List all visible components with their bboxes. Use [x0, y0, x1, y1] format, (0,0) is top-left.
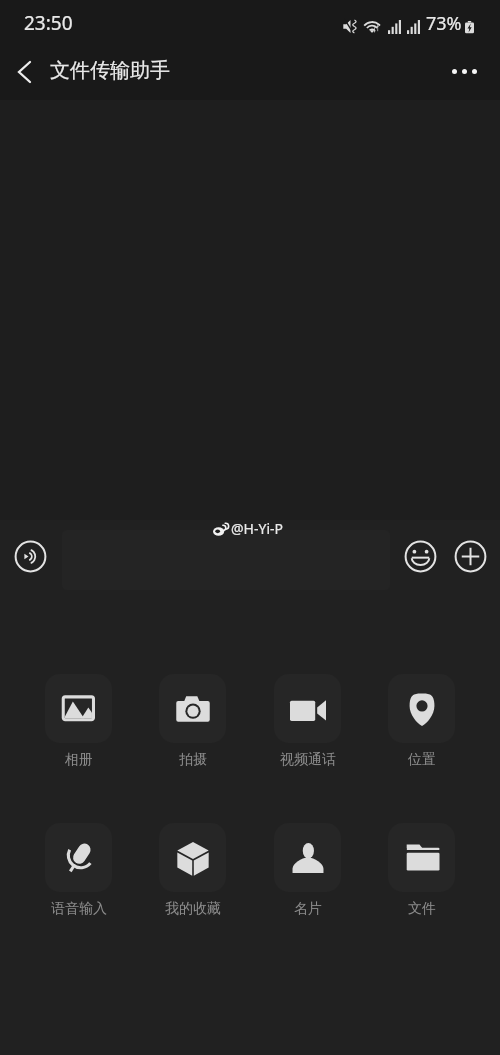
- staticText: 拍摄: [179, 751, 207, 769]
- button[interactable]: 语音输入: [45, 823, 112, 918]
- button[interactable]: Back: [0, 48, 48, 96]
- staticText: 语音输入: [51, 900, 107, 918]
- staticText: 文件: [408, 900, 436, 918]
- button[interactable]: More options: [442, 49, 486, 93]
- staticText: 23:50: [24, 10, 73, 36]
- button[interactable]: 拍摄: [159, 674, 226, 769]
- staticText: 位置: [408, 751, 436, 769]
- button[interactable]: Emoji: [404, 540, 437, 573]
- staticText: 名片: [294, 900, 322, 918]
- button[interactable]: 相册: [45, 674, 112, 769]
- staticText: 我的收藏: [165, 900, 221, 918]
- button[interactable]: 名片: [274, 823, 341, 918]
- button[interactable]: 位置: [388, 674, 455, 769]
- staticText: 相册: [65, 751, 93, 769]
- staticText: 文件传输助手: [50, 58, 170, 83]
- button[interactable]: 我的收藏: [159, 823, 226, 918]
- button[interactable]: More: [454, 540, 487, 573]
- staticText: 视频通话: [280, 751, 336, 769]
- button[interactable]: 文件: [388, 823, 455, 918]
- button[interactable]: Voice input: [14, 540, 47, 573]
- staticText: @H-Yi-P: [231, 519, 283, 538]
- button[interactable]: 视频通话: [274, 674, 341, 769]
- staticText: 73%: [426, 11, 462, 36]
- button[interactable]: [62, 530, 390, 590]
